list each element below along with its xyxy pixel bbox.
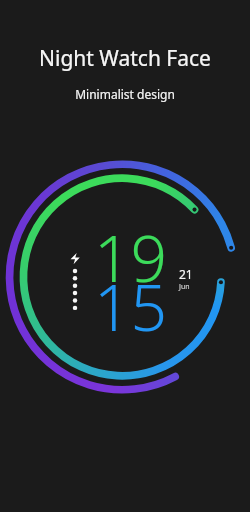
button[interactable]: Battery level <box>68 253 82 309</box>
staticText: Minimalist design <box>75 86 175 102</box>
staticText: Jun <box>179 282 190 292</box>
staticText: 21 <box>179 266 193 282</box>
staticText: 19 <box>94 214 168 301</box>
staticText: 15 <box>94 263 168 350</box>
button[interactable]: 19 <box>1 146 245 408</box>
staticText: Night Watch Face <box>39 44 211 73</box>
